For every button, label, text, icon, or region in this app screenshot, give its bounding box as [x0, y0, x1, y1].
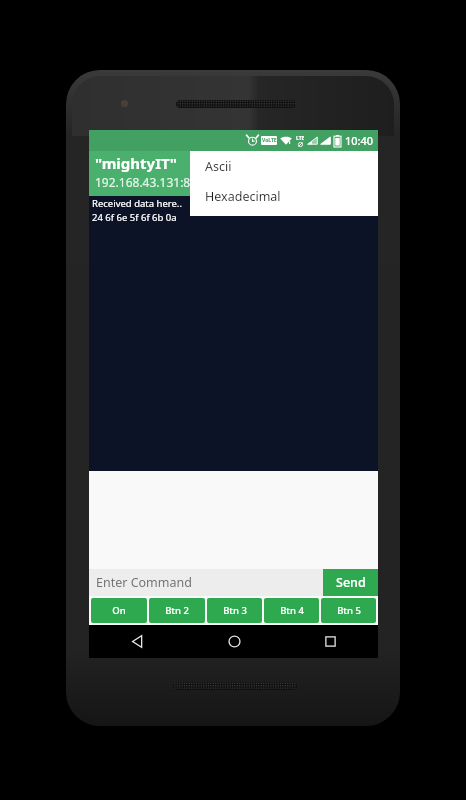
- button[interactable]: Home: [186, 625, 282, 658]
- staticText: Hexadecimal: [205, 188, 281, 205]
- staticText: Ascii: [205, 158, 232, 175]
- staticText: LTE: [296, 135, 305, 142]
- staticText: 10:40: [345, 133, 374, 148]
- staticText: Btn 4: [280, 604, 304, 617]
- button[interactable]: Enter Command: [89, 569, 323, 596]
- button[interactable]: Btn 4: [264, 598, 319, 623]
- staticText: Btn 5: [337, 604, 361, 617]
- button[interactable]: Back: [89, 625, 186, 658]
- button[interactable]: Hexadecimal: [190, 181, 378, 211]
- button[interactable]: Btn 2: [149, 598, 205, 623]
- staticText: Received data here..: [92, 197, 182, 210]
- button[interactable]: On: [91, 598, 147, 623]
- button[interactable]: Btn 3: [207, 598, 262, 623]
- staticText: 192.168.43.131:8080: [95, 174, 211, 190]
- staticText: VoLTE: [262, 137, 277, 144]
- button[interactable]: Send: [323, 569, 378, 596]
- staticText: Btn 2: [165, 604, 189, 617]
- staticText: Btn 3: [223, 604, 247, 617]
- staticText: Send: [336, 574, 366, 591]
- staticText: 24 6f 6e 5f 6f 6b 0a: [92, 211, 177, 224]
- staticText: On: [112, 604, 126, 617]
- staticText: "mightyIT": [95, 153, 177, 173]
- button[interactable]: Ascii: [190, 151, 378, 181]
- staticText: Enter Command: [96, 574, 192, 591]
- button[interactable]: Recent apps: [282, 625, 378, 658]
- button[interactable]: Btn 5: [321, 598, 376, 623]
- button[interactable]: "mightyIT": [89, 151, 378, 196]
